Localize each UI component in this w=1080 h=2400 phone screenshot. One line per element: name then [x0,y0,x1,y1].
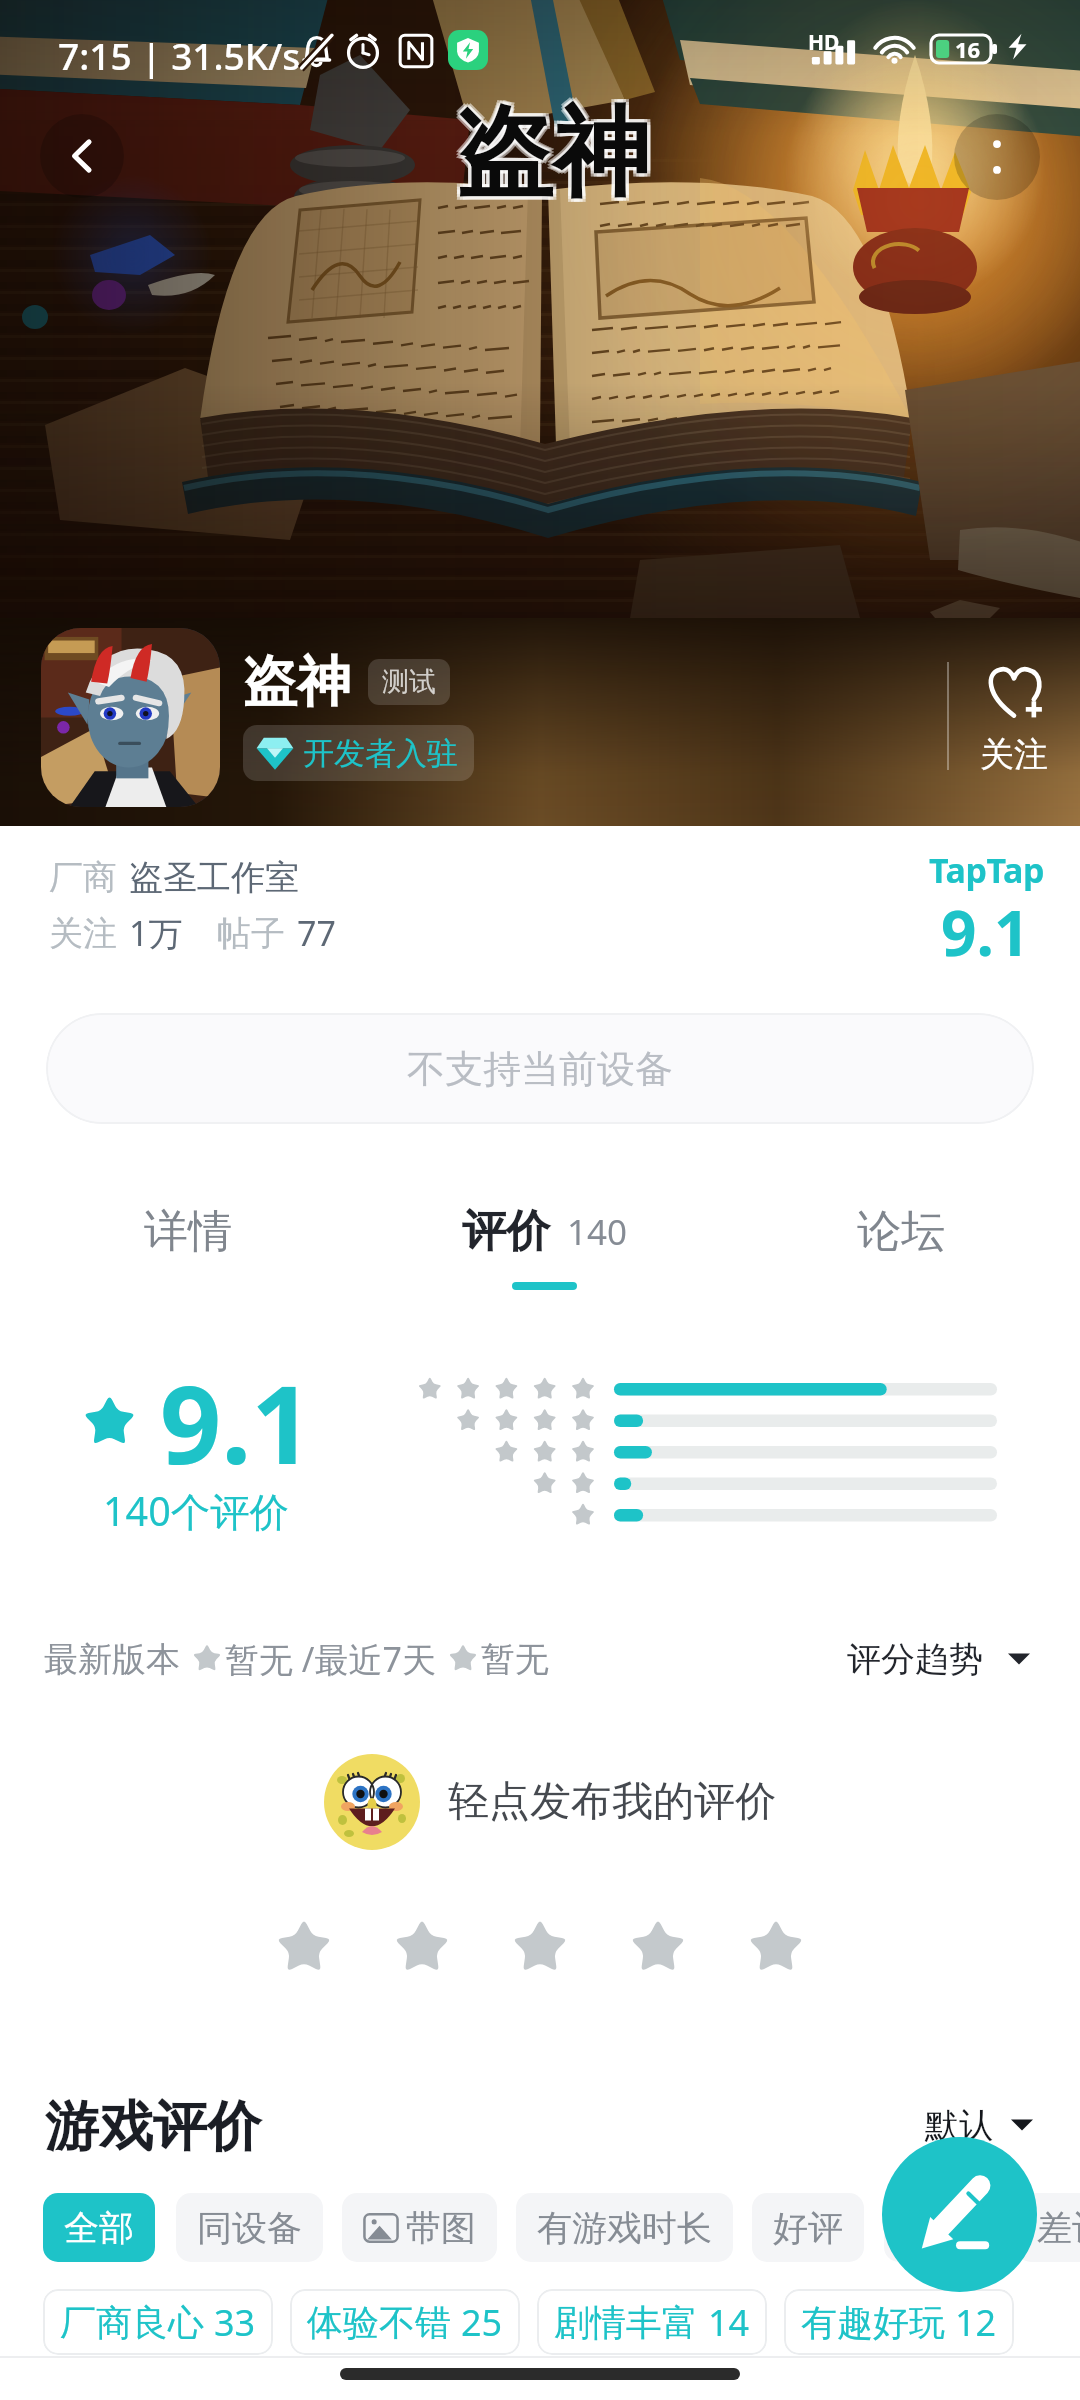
button[interactable]: Rate 1 stars [275,1915,333,1973]
button[interactable]: 全部 [43,2193,155,2262]
button[interactable]: Write review [882,2137,1037,2292]
staticText: 盗神 [453,90,647,212]
button[interactable]: 中评 [884,2193,996,2262]
staticText: 12 [955,2298,997,2347]
staticText: 评价 [462,1204,550,1259]
staticText: 剧情丰富 [554,2300,698,2345]
staticText: 厂商 [49,856,117,899]
button[interactable]: 不支持当前设备 [46,1013,1034,1124]
button[interactable]: Back [40,114,124,198]
staticText: 好评 [773,2206,843,2250]
button[interactable]: 论坛 [723,1198,1079,1298]
button[interactable]: Rate 5 stars [747,1915,805,1973]
button[interactable]: 默认 [925,2102,1033,2148]
button[interactable]: 同设备 [176,2193,323,2262]
staticText: 最新版本 [44,1638,180,1681]
button[interactable]: Rate 3 stars [511,1915,569,1973]
staticText: 盗神 [456,93,650,215]
staticText: 详情 [144,1204,232,1259]
staticText: 默认 [925,2104,993,2147]
staticText: 盗神 [459,96,653,218]
staticText: 1万 [129,910,183,956]
staticText: 同设备 [197,2206,302,2250]
staticText: 盗神 [243,648,351,716]
staticText: TapTap [929,847,1045,893]
staticText: 盗神 [459,90,653,212]
button[interactable]: 好评 [752,2193,864,2262]
button[interactable]: 有趣好玩 [784,2289,1014,2355]
staticText: 25 [461,2298,503,2347]
staticText: 有趣好玩 [801,2300,945,2345]
staticText: 77 [297,910,336,956]
button[interactable]: 开发者入驻 [243,725,474,781]
button[interactable]: 轻点发布我的评价 [0,1748,1080,1856]
staticText: 关注 [980,733,1048,776]
staticText: 盗神 [456,90,650,212]
staticText: 140 [567,1208,628,1256]
button[interactable]: 详情 [10,1198,366,1298]
staticText: 暂无 /最近7天 [225,1636,436,1682]
button[interactable]: 厂商良心 [43,2289,273,2355]
button[interactable]: Rate 4 stars [629,1915,687,1973]
staticText: 盗圣工作室 [129,856,299,899]
staticText: 差评 [1037,2206,1080,2250]
staticText: 盗神 [456,96,650,218]
button[interactable]: 关注 [948,628,1080,808]
staticText: HD [808,28,840,57]
staticText: 论坛 [857,1204,945,1259]
staticText: 盗神 [459,93,653,215]
staticText: 14 [708,2298,750,2347]
staticText: 游戏评价 [45,2093,261,2161]
staticText: 9.1 [160,1350,313,1496]
staticText: 盗神 [453,93,647,215]
staticText: 有游戏时长 [537,2206,712,2250]
staticText: 开发者入驻 [303,734,458,773]
staticText: 中评 [905,2206,975,2250]
button[interactable]: 有游戏时长 [516,2193,733,2262]
button[interactable]: 带图 [342,2193,497,2262]
staticText: 轻点发布我的评价 [448,1776,776,1828]
button[interactable] [41,628,220,807]
button[interactable]: More options [954,114,1040,200]
staticText: 16 [955,34,981,64]
staticText: 全部 [64,2206,134,2250]
staticText: 盗神 [453,96,647,218]
button[interactable]: 评价 [367,1198,723,1298]
button[interactable]: Rate 2 stars [393,1915,451,1973]
staticText: 测试 [382,665,436,699]
staticText: 体验不错 [307,2300,451,2345]
staticText: 33 [214,2298,256,2347]
staticText: 不支持当前设备 [407,1045,673,1093]
button[interactable]: 体验不错 [290,2289,520,2355]
staticText: 140个评价 [103,1484,290,1538]
button[interactable]: 剧情丰富 [537,2289,767,2355]
staticText: 帖子 [217,912,285,955]
staticText: 评分趋势 [847,1638,983,1681]
staticText: 暂无 [481,1638,549,1681]
staticText: 9.1 [941,890,1030,974]
staticText: 关注 [49,912,117,955]
staticText: 带图 [406,2206,476,2250]
staticText: 厂商良心 [60,2300,204,2345]
button[interactable]: 差评 [1016,2193,1080,2262]
button[interactable]: 评分趋势 [847,1636,1030,1682]
staticText: 7:15 | 31.5K/s [58,30,301,80]
